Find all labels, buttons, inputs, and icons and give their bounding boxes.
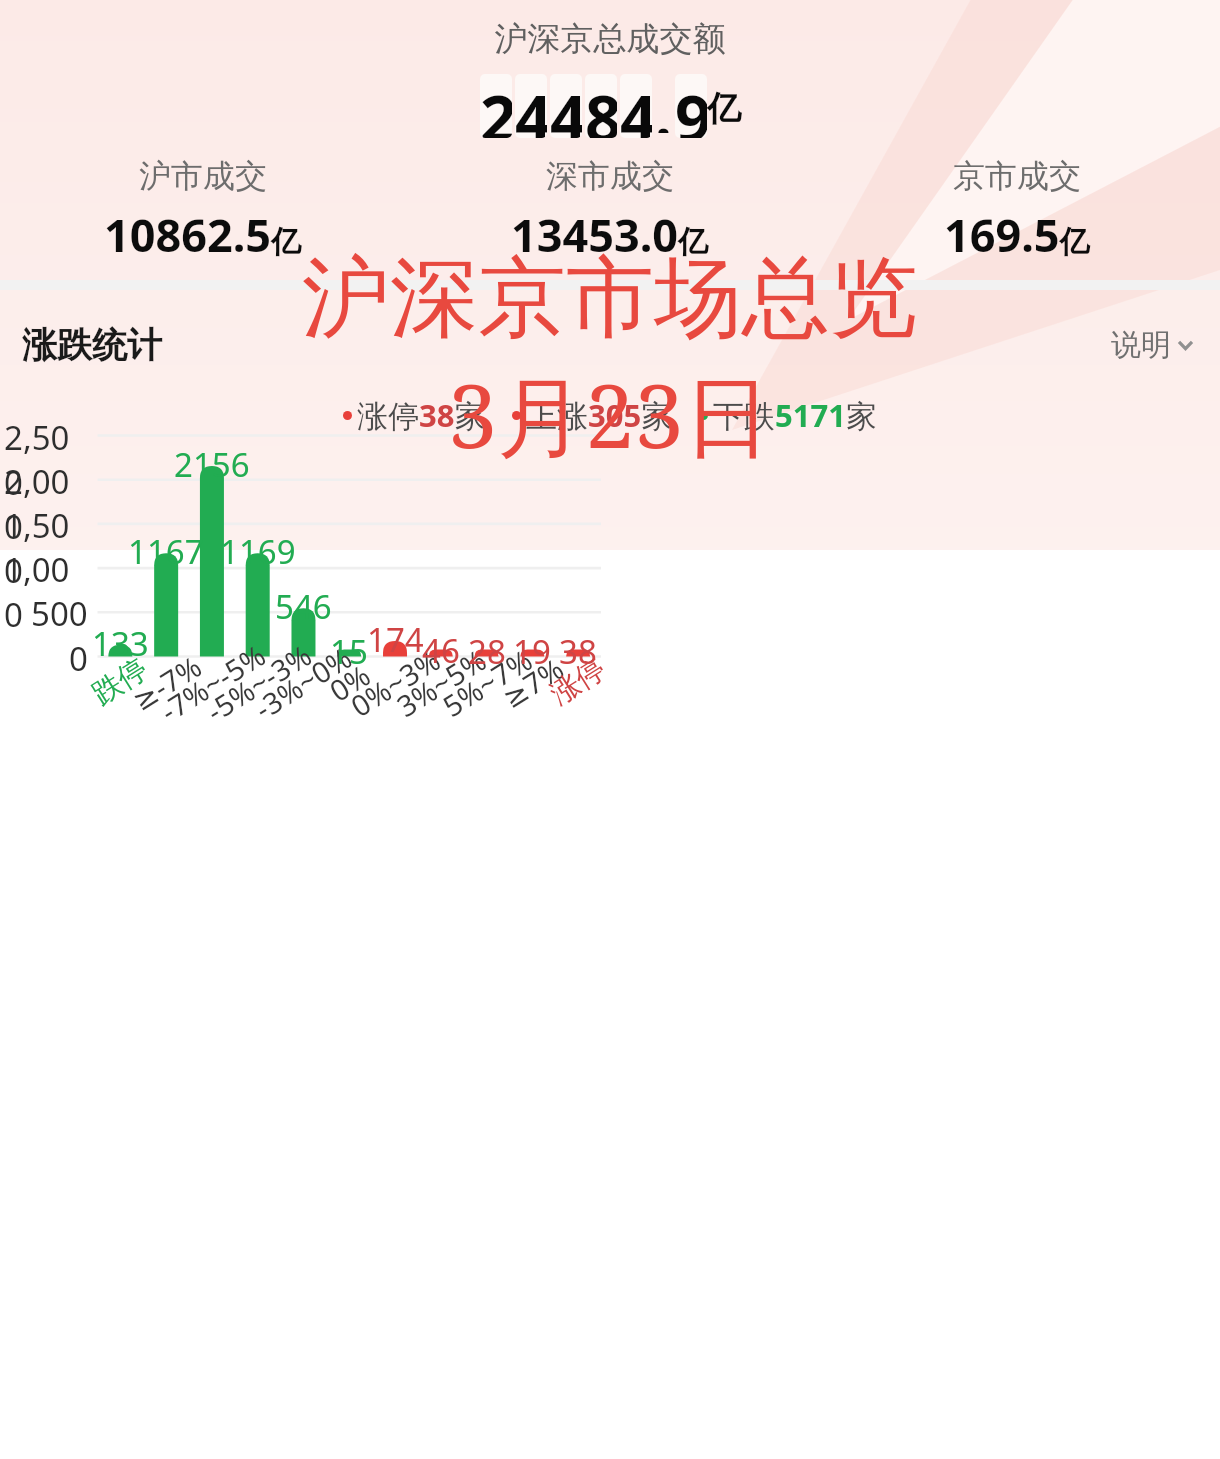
staticText: 0 bbox=[69, 636, 88, 681]
staticText: 1,500 bbox=[4, 503, 88, 593]
button[interactable]: -3%~0% bbox=[247, 637, 359, 728]
staticText: 2,500 bbox=[4, 415, 88, 505]
staticText: 133 bbox=[92, 621, 149, 666]
staticText: 174 bbox=[367, 617, 424, 662]
staticText: 9 bbox=[675, 74, 707, 138]
staticText: 4 bbox=[620, 74, 652, 138]
staticText: 0%~3% bbox=[343, 640, 447, 725]
staticText: 28 bbox=[468, 629, 506, 674]
staticText: 1169 bbox=[220, 529, 296, 574]
staticText: 38 bbox=[559, 629, 597, 674]
staticText: -5%~-3% bbox=[199, 635, 318, 730]
button[interactable]: 京市成交 bbox=[813, 156, 1220, 265]
staticText: 上涨305家 bbox=[526, 394, 673, 436]
other: Show explanation bbox=[1179, 341, 1192, 349]
button[interactable]: 0%~3% bbox=[343, 640, 447, 725]
button[interactable]: -5%~-3% bbox=[199, 635, 318, 730]
staticText: 3月23日 bbox=[448, 354, 772, 474]
staticText: 4 bbox=[515, 74, 547, 138]
staticText: 2156 bbox=[174, 442, 250, 487]
button[interactable]: 3%~5% bbox=[389, 640, 493, 725]
button[interactable]: 跌停 bbox=[86, 650, 154, 712]
staticText: 1167 bbox=[128, 529, 204, 574]
staticText: 5%~7% bbox=[435, 640, 539, 725]
staticText: ≥7% bbox=[495, 649, 570, 716]
staticText: 3%~5% bbox=[389, 640, 493, 725]
button[interactable]: -7%~-5% bbox=[153, 635, 272, 730]
staticText: ≥-7% bbox=[124, 646, 209, 719]
staticText: -7%~-5% bbox=[153, 635, 272, 730]
staticText: 1,000 bbox=[4, 547, 88, 637]
staticText: . bbox=[655, 74, 672, 133]
staticText: 546 bbox=[275, 584, 332, 629]
button[interactable]: 说明 bbox=[1105, 320, 1198, 370]
staticText: 2,000 bbox=[4, 459, 88, 549]
button[interactable]: 涨停 bbox=[544, 650, 612, 712]
staticText: 500 bbox=[31, 591, 88, 636]
button[interactable]: 上涨305家 bbox=[512, 394, 673, 436]
staticText: -3%~0% bbox=[247, 637, 359, 728]
button[interactable]: ≥-7% bbox=[124, 646, 209, 719]
staticText: 沪市成交 bbox=[139, 156, 267, 196]
button[interactable]: 沪市成交 bbox=[0, 156, 406, 265]
staticText: 46 bbox=[422, 628, 460, 673]
staticText: 2 bbox=[480, 74, 512, 138]
staticText: 涨跌统计 bbox=[22, 323, 162, 367]
staticText: 15 bbox=[330, 629, 368, 674]
staticText: 深市成交 bbox=[546, 156, 674, 196]
button[interactable]: 0% bbox=[322, 655, 377, 710]
staticText: 涨停38家 bbox=[357, 394, 486, 436]
button[interactable]: 深市成交 bbox=[406, 156, 813, 265]
staticText: 说明 bbox=[1111, 326, 1171, 364]
staticText: 下跌5171家 bbox=[713, 394, 877, 436]
staticText: 亿 bbox=[707, 87, 741, 130]
button[interactable]: 涨停38家 bbox=[343, 394, 486, 436]
staticText: 涨停 bbox=[544, 650, 612, 712]
staticText: 沪深京市场总览 bbox=[302, 243, 918, 354]
staticText: 沪深京总成交额 bbox=[0, 18, 1220, 60]
staticText: 0% bbox=[322, 655, 377, 710]
staticText: 10862.5亿 bbox=[104, 204, 302, 265]
button[interactable]: 下跌5171家 bbox=[699, 394, 877, 436]
staticText: 169.5亿 bbox=[944, 204, 1090, 265]
staticText: 跌停 bbox=[86, 650, 154, 712]
staticText: 京市成交 bbox=[953, 156, 1081, 196]
staticText: 8 bbox=[585, 74, 617, 138]
staticText: 13453.0亿 bbox=[511, 204, 709, 265]
staticText: 4 bbox=[550, 74, 582, 138]
staticText: 19 bbox=[513, 629, 551, 674]
button[interactable]: ≥7% bbox=[495, 649, 570, 716]
button[interactable]: 5%~7% bbox=[435, 640, 539, 725]
